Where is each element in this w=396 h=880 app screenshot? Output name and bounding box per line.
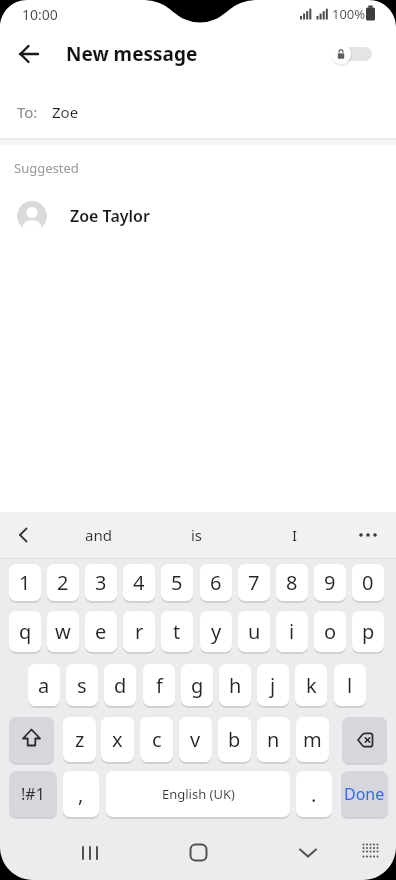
staticText: Suggested [14, 159, 79, 177]
staticText: Done [344, 783, 385, 805]
staticText: d [114, 672, 127, 699]
staticText: and [85, 525, 112, 545]
staticText: c [152, 726, 162, 753]
staticText: !#1 [21, 783, 45, 805]
staticText: v [190, 726, 201, 753]
staticText: 4 [133, 569, 145, 596]
staticText: a [38, 672, 50, 699]
staticText: is [191, 525, 203, 545]
staticText: n [267, 726, 280, 753]
staticText: x [112, 726, 123, 753]
staticText: . [311, 781, 317, 808]
staticText: , [78, 781, 84, 808]
staticText: 5 [171, 569, 183, 596]
staticText: o [324, 618, 337, 645]
staticText: i [289, 618, 295, 645]
staticText: 100% [332, 5, 366, 23]
staticText: 8 [286, 569, 298, 596]
staticText: 10:00 [22, 5, 58, 24]
staticText: b [228, 726, 241, 753]
staticText: e [95, 618, 107, 645]
staticText: 0 [362, 569, 374, 596]
staticText: f [156, 672, 163, 699]
staticText: s [77, 672, 87, 699]
staticText: 9 [324, 569, 336, 596]
staticText: I [292, 525, 298, 545]
staticText: Zoe [52, 102, 79, 122]
staticText: New message [66, 41, 198, 67]
staticText: q [19, 618, 32, 645]
staticText: l [347, 672, 353, 699]
staticText: k [306, 672, 317, 699]
staticText: h [229, 672, 242, 699]
staticText: w [55, 618, 71, 645]
staticText: m [303, 726, 322, 753]
staticText: y [211, 618, 222, 645]
staticText: 2 [57, 569, 69, 596]
staticText: r [135, 618, 144, 645]
staticText: g [191, 672, 204, 699]
staticText: t [173, 618, 181, 645]
staticText: z [75, 726, 85, 753]
staticText: u [248, 618, 261, 645]
staticText: 7 [248, 569, 260, 596]
staticText: English (UK) [162, 785, 235, 803]
staticText: j [270, 672, 276, 699]
staticText: 6 [210, 569, 222, 596]
staticText: Zoe Taylor [70, 205, 150, 227]
staticText: p [362, 618, 375, 645]
staticText: 1 [19, 569, 31, 596]
staticText: 3 [95, 569, 107, 596]
staticText: To: [17, 102, 38, 122]
